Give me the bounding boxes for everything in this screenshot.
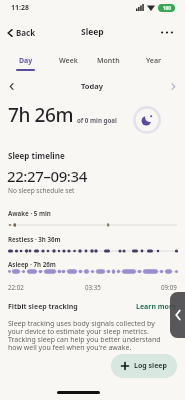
staticText: Fitbit sleep tracking bbox=[8, 302, 78, 312]
button[interactable] bbox=[9, 83, 14, 90]
staticText: Day bbox=[19, 56, 33, 66]
staticText: Sleep tracking uses body signals collect… bbox=[8, 319, 161, 352]
button[interactable]: Year bbox=[146, 56, 162, 66]
staticText: Awake · 5 min bbox=[8, 209, 51, 217]
staticText: 09:09 bbox=[161, 283, 177, 291]
staticText: Log sleep bbox=[134, 361, 167, 371]
staticText: 7h 26m bbox=[8, 102, 74, 128]
staticText: No sleep schedule set bbox=[8, 186, 75, 195]
button[interactable]: Back bbox=[7, 27, 36, 38]
button[interactable] bbox=[171, 83, 176, 90]
button[interactable] bbox=[170, 292, 185, 338]
staticText: Asleep · 7h 26m bbox=[8, 260, 56, 268]
staticText: 100 bbox=[163, 5, 171, 11]
staticText: 22:27–09:34 bbox=[7, 166, 87, 186]
button[interactable]: Day bbox=[16, 56, 35, 71]
staticText: of 0 min goal bbox=[77, 116, 117, 124]
staticText: Sleep timeline bbox=[8, 150, 65, 161]
button[interactable] bbox=[132, 105, 162, 135]
button[interactable]: Learn more bbox=[136, 302, 177, 312]
staticText: Sleep bbox=[81, 26, 104, 38]
staticText: 22:02 bbox=[8, 283, 24, 291]
button[interactable]: Today bbox=[81, 81, 104, 91]
button[interactable]: Log sleep bbox=[111, 354, 177, 378]
staticText: 03:35 bbox=[85, 283, 101, 291]
staticText: Back bbox=[16, 27, 36, 38]
staticText: Restless · 3h 36m bbox=[8, 235, 61, 243]
button[interactable] bbox=[161, 31, 173, 34]
staticText: 11:28 bbox=[11, 3, 29, 13]
button[interactable]: Week bbox=[59, 56, 78, 66]
button[interactable]: Month bbox=[97, 56, 120, 66]
